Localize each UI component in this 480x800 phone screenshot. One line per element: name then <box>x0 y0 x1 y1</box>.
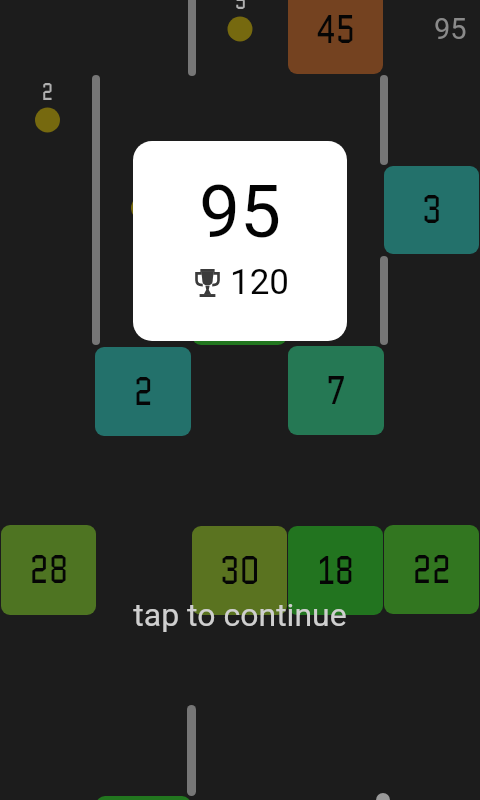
staticText: 18 <box>317 543 355 599</box>
staticText: 7 <box>327 363 345 419</box>
staticText: 2 <box>134 364 153 420</box>
staticText: 95 <box>434 12 467 46</box>
staticText: 28 <box>29 542 68 598</box>
staticText: 3 <box>422 182 442 238</box>
staticText: 30 <box>220 543 260 599</box>
staticText: 120 <box>230 262 290 303</box>
button[interactable]: 95 <box>133 141 347 341</box>
staticText: tap to continue <box>133 596 347 634</box>
staticText: 95 <box>199 169 282 255</box>
staticText: 5 <box>235 0 246 18</box>
staticText: 45 <box>316 2 355 58</box>
staticText: 22 <box>412 542 451 598</box>
button[interactable]: tap to continue <box>0 0 480 800</box>
staticText: 2 <box>42 76 53 109</box>
